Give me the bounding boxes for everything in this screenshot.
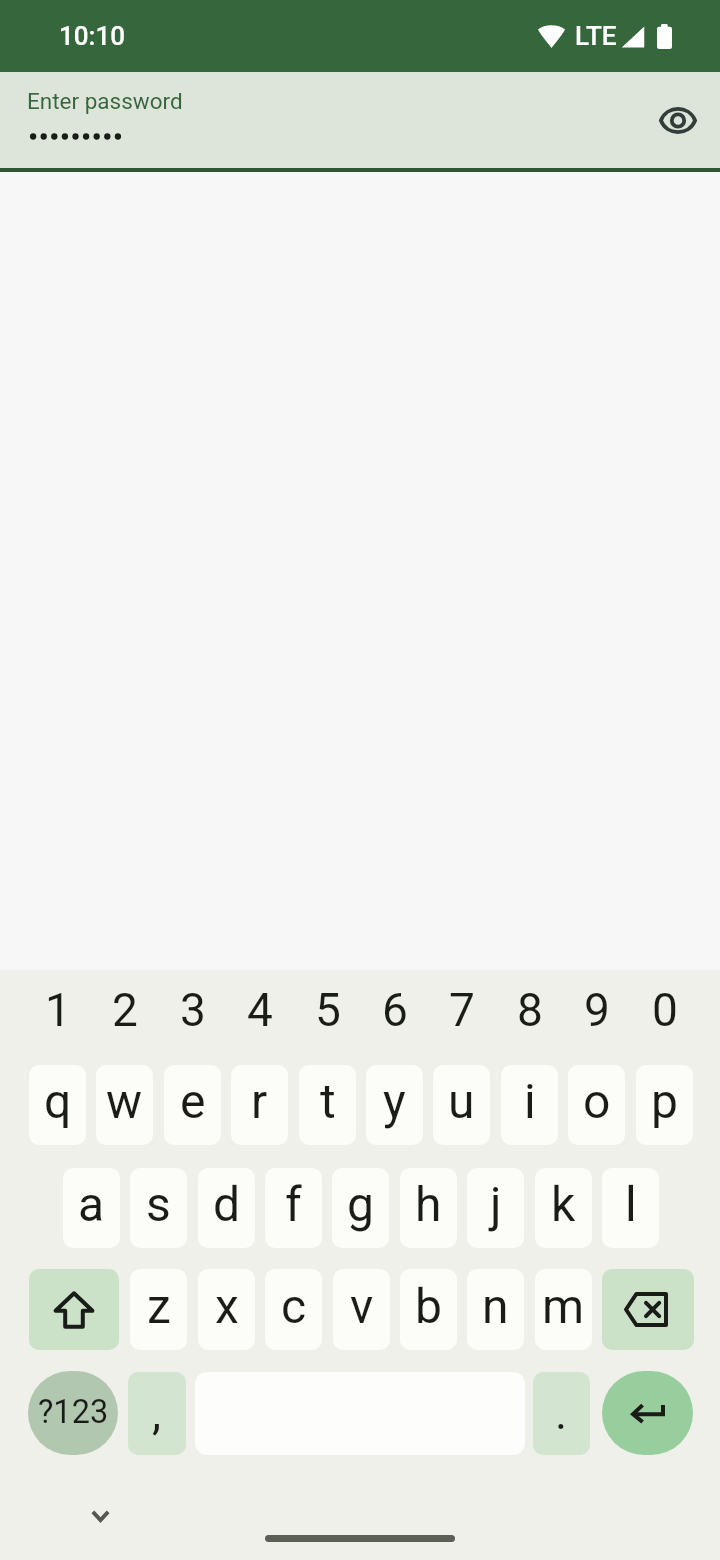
button[interactable]: 1 xyxy=(29,964,86,1054)
button[interactable]: 6 xyxy=(366,964,423,1054)
staticText: 7 xyxy=(449,983,475,1037)
staticText: g xyxy=(347,1176,374,1232)
button[interactable]: e xyxy=(164,1065,221,1145)
button[interactable]: n xyxy=(467,1269,524,1350)
button[interactable]: ?123 xyxy=(28,1371,118,1455)
staticText: h xyxy=(415,1176,442,1232)
staticText: n xyxy=(482,1278,509,1334)
staticText: . xyxy=(555,1386,568,1440)
button[interactable]: a xyxy=(63,1168,120,1248)
button[interactable]: i xyxy=(501,1065,558,1145)
staticText: o xyxy=(583,1073,611,1129)
button[interactable]: Backspace xyxy=(602,1269,694,1350)
staticText: r xyxy=(251,1073,268,1129)
staticText: 6 xyxy=(382,983,408,1037)
staticText: y xyxy=(383,1073,406,1129)
button[interactable]: 7 xyxy=(433,964,490,1054)
staticText: i xyxy=(524,1073,536,1129)
button[interactable]: r xyxy=(231,1065,288,1145)
staticText: u xyxy=(448,1073,475,1129)
button[interactable]: v xyxy=(333,1269,390,1350)
button[interactable]: j xyxy=(467,1168,524,1248)
staticText: w xyxy=(106,1073,143,1129)
button[interactable]: d xyxy=(198,1168,255,1248)
button[interactable]: Shift xyxy=(29,1269,119,1350)
staticText: LTE xyxy=(575,21,617,51)
button[interactable]: f xyxy=(265,1168,322,1248)
staticText: f xyxy=(285,1176,302,1232)
staticText: e xyxy=(180,1073,206,1129)
button[interactable]: p xyxy=(636,1065,693,1145)
staticText: 9 xyxy=(584,983,610,1037)
button[interactable]: c xyxy=(265,1269,322,1350)
staticText: k xyxy=(551,1176,576,1232)
staticText: Enter password xyxy=(27,88,183,114)
button[interactable]: k xyxy=(535,1168,592,1248)
button[interactable]: Show password xyxy=(647,89,709,151)
button[interactable]: 2 xyxy=(96,964,153,1054)
button[interactable]: g xyxy=(332,1168,389,1248)
button[interactable]: , xyxy=(128,1372,186,1455)
button[interactable]: q xyxy=(29,1065,86,1145)
button[interactable]: u xyxy=(433,1065,490,1145)
button[interactable]: m xyxy=(535,1269,592,1350)
staticText: x xyxy=(215,1278,239,1334)
staticText: z xyxy=(147,1278,171,1334)
button[interactable]: t xyxy=(299,1065,356,1145)
staticText: t xyxy=(320,1073,336,1129)
staticText: s xyxy=(146,1176,171,1232)
button[interactable]: x xyxy=(198,1269,255,1350)
button[interactable]: w xyxy=(96,1065,153,1145)
button[interactable]: 9 xyxy=(568,964,625,1054)
staticText: 1 xyxy=(45,983,71,1037)
staticText: 4 xyxy=(247,983,273,1037)
button[interactable]: h xyxy=(400,1168,457,1248)
staticText: p xyxy=(651,1073,678,1129)
staticText: a xyxy=(78,1176,105,1232)
staticText: m xyxy=(542,1278,585,1334)
staticText: 10:10 xyxy=(59,21,125,51)
button[interactable]: s xyxy=(130,1168,187,1248)
button[interactable]: 0 xyxy=(636,964,693,1054)
button[interactable]: 8 xyxy=(501,964,558,1054)
staticText: b xyxy=(415,1278,442,1334)
staticText: 0 xyxy=(652,983,678,1037)
staticText: c xyxy=(281,1278,307,1334)
button[interactable]: . xyxy=(533,1372,590,1455)
staticText: j xyxy=(490,1176,502,1232)
staticText: l xyxy=(625,1176,637,1232)
button[interactable]: Enter xyxy=(602,1371,693,1455)
button[interactable]: 3 xyxy=(164,964,221,1054)
button[interactable]: l xyxy=(602,1168,659,1248)
staticText: 5 xyxy=(315,983,341,1037)
staticText: 2 xyxy=(112,983,138,1037)
staticText: , xyxy=(152,1386,162,1440)
button[interactable]: y xyxy=(366,1065,423,1145)
staticText: 8 xyxy=(517,983,543,1037)
staticText: v xyxy=(350,1278,374,1334)
staticText: d xyxy=(213,1176,241,1232)
button[interactable]: 5 xyxy=(299,964,356,1054)
staticText: ?123 xyxy=(38,1393,109,1431)
staticText: q xyxy=(44,1073,72,1129)
button[interactable]: o xyxy=(568,1065,625,1145)
button[interactable]: b xyxy=(400,1269,457,1350)
button[interactable]: 4 xyxy=(231,964,288,1054)
button[interactable]: Hide keyboard xyxy=(77,1493,123,1539)
staticText: 3 xyxy=(180,983,206,1037)
button[interactable]: z xyxy=(130,1269,187,1350)
